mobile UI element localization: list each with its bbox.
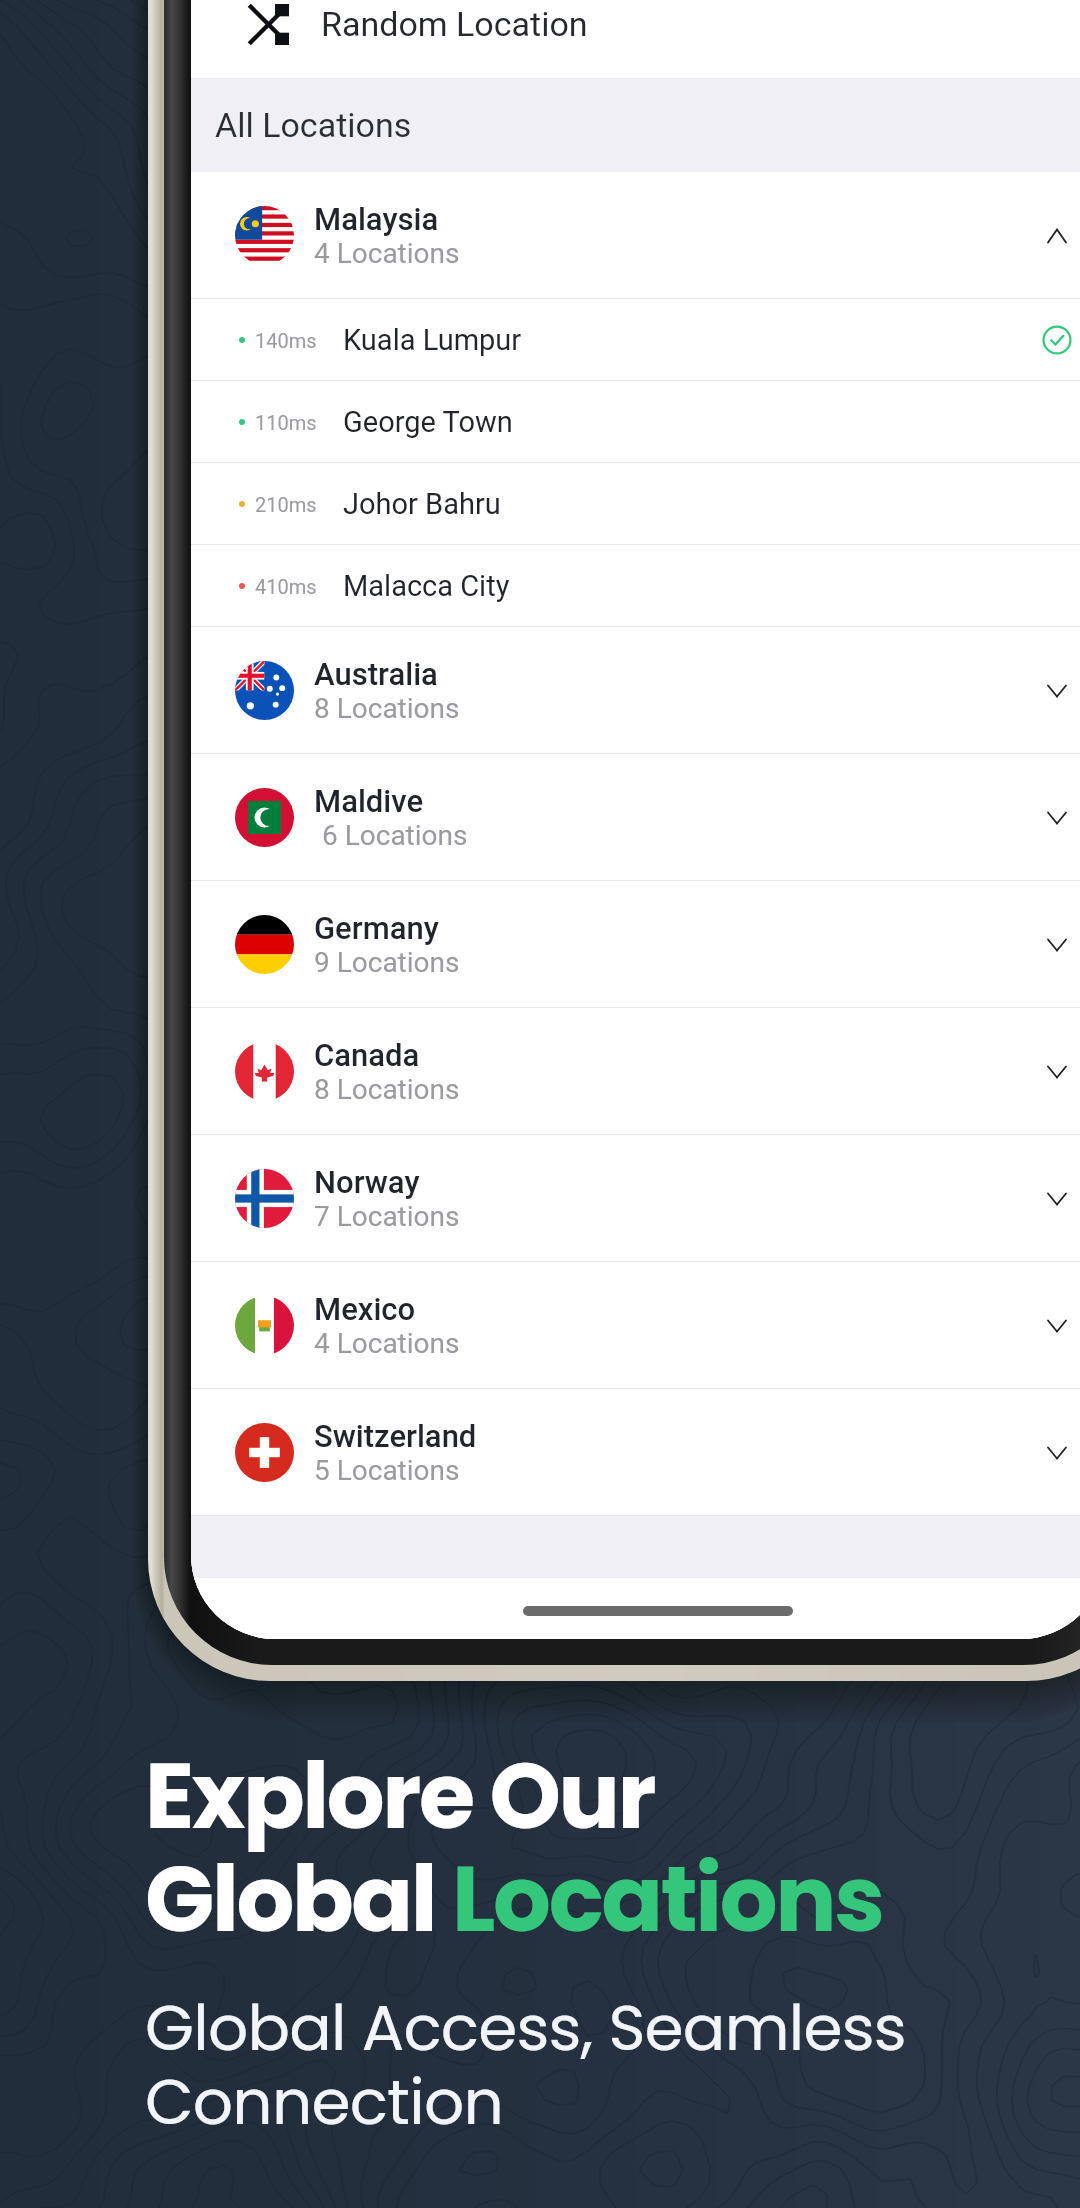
staticText: Switzerland — [314, 1418, 477, 1454]
staticText: 410ms — [255, 575, 317, 598]
button[interactable]: Maldive — [191, 754, 1080, 881]
staticText: 8 Locations — [314, 692, 460, 725]
staticText: Canada — [314, 1037, 420, 1073]
staticText: Maldive — [314, 783, 424, 819]
button[interactable]: Switzerland — [191, 1389, 1080, 1516]
staticText: Germany — [314, 910, 439, 946]
other: Expand Switzerland — [1037, 1433, 1077, 1473]
button[interactable]: Mexico — [191, 1262, 1080, 1389]
staticText: 7 Locations — [314, 1200, 460, 1233]
staticText: 140ms — [255, 329, 317, 352]
staticText: Random Location — [321, 4, 588, 44]
staticText: Malaysia — [314, 201, 439, 237]
other: Expand Australia — [1037, 671, 1077, 711]
button[interactable]: Germany — [191, 881, 1080, 1008]
staticText: 4 Locations — [314, 1327, 460, 1360]
button[interactable]: 410ms — [191, 545, 1080, 627]
staticText: Australia — [314, 656, 438, 692]
other: Selected — [1041, 324, 1073, 356]
staticText: 8 Locations — [314, 1073, 460, 1106]
staticText: 6 Locations — [322, 819, 468, 852]
other: Expand Norway — [1037, 1179, 1077, 1219]
staticText: Malacca City — [343, 569, 510, 603]
staticText: Explore Our Global Locations — [145, 1732, 883, 1963]
staticText: Kuala Lumpur — [343, 323, 522, 357]
button[interactable]: Australia — [191, 627, 1080, 754]
button[interactable]: Canada — [191, 1008, 1080, 1135]
staticText: 9 Locations — [314, 946, 460, 979]
staticText: Norway — [314, 1164, 420, 1200]
staticText: George Town — [343, 405, 513, 439]
other: Expand Germany — [1037, 925, 1077, 965]
other: Shuffle — [248, 4, 289, 45]
button[interactable]: 210ms — [191, 463, 1080, 545]
staticText: 4 Locations — [314, 237, 460, 270]
button[interactable]: 110ms — [191, 381, 1080, 463]
button[interactable]: Norway — [191, 1135, 1080, 1262]
staticText: 5 Locations — [314, 1454, 460, 1487]
button[interactable]: 140ms — [191, 299, 1080, 381]
staticText: Global Access, Seamless Connection — [145, 1984, 906, 2146]
staticText: Mexico — [314, 1291, 416, 1327]
staticText: 210ms — [255, 493, 317, 516]
button[interactable]: Shuffle — [191, 0, 1080, 78]
staticText: Johor Bahru — [343, 487, 501, 521]
other: Collapse Malaysia — [1037, 216, 1077, 256]
other: Expand Maldive — [1037, 798, 1077, 838]
staticText: 110ms — [255, 411, 317, 434]
staticText: All Locations — [215, 105, 412, 145]
other: Expand Mexico — [1037, 1306, 1077, 1346]
other: Expand Canada — [1037, 1052, 1077, 1092]
button[interactable]: Malaysia — [191, 172, 1080, 299]
